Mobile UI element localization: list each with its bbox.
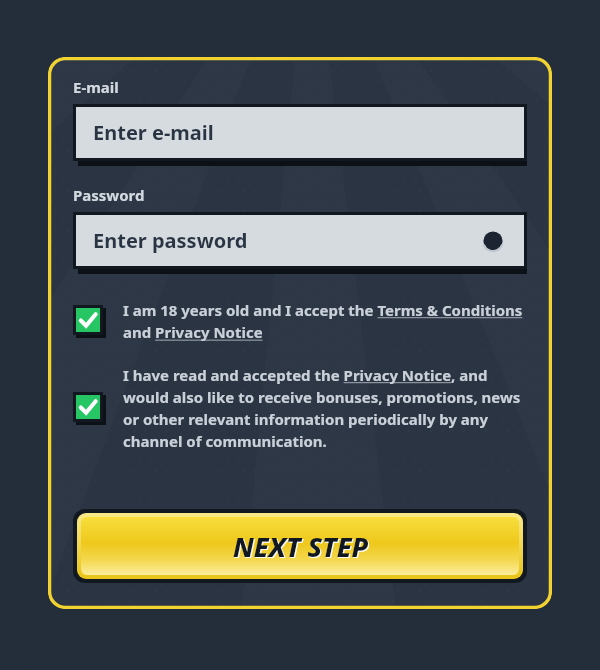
staticText: NEXT STEP (233, 528, 369, 565)
staticText: Enter e-mail (93, 119, 214, 146)
staticText: Password (73, 185, 145, 205)
button[interactable]: Show password (478, 226, 508, 256)
button[interactable]: Enter e-mail (73, 104, 527, 166)
button[interactable]: NEXT STEP (73, 509, 527, 583)
staticText: I am 18 years old and I accept the Terms… (123, 300, 527, 343)
staticText: Enter password (93, 227, 248, 254)
button[interactable]: Enter password (73, 212, 527, 274)
staticText: E-mail (73, 77, 119, 97)
button[interactable]: I have read and accepted the Privacy Not… (73, 365, 527, 452)
staticText: I have read and accepted the Privacy Not… (123, 365, 527, 452)
button[interactable]: I am 18 years old and I accept the Terms… (73, 300, 527, 343)
staticText: NEXT STEP (234, 529, 370, 566)
